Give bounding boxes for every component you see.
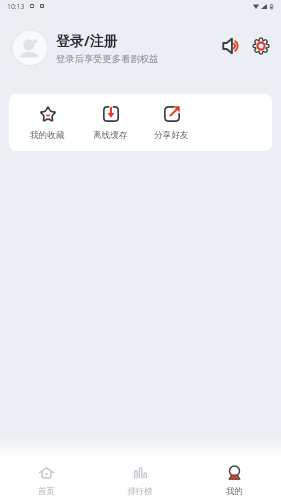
staticText: 排行榜: [127, 486, 153, 497]
button[interactable]: 首页: [0, 459, 93, 500]
staticText: 登录后享受更多看剧权益: [56, 53, 159, 65]
button[interactable]: 我的: [187, 459, 281, 500]
staticText: 分享好友: [154, 130, 189, 141]
staticText: 10:13: [7, 2, 25, 11]
button[interactable]: 离线缓存: [73, 94, 148, 151]
staticText: 离线缓存: [93, 130, 128, 141]
button[interactable]: Settings: [250, 35, 272, 57]
button[interactable]: 我的收藏: [10, 94, 85, 151]
staticText: 我的收藏: [30, 130, 65, 141]
button[interactable]: Sound: [219, 35, 242, 57]
button[interactable]: 排行榜: [93, 459, 187, 500]
button[interactable]: 分享好友: [134, 94, 209, 151]
staticText: 我的: [226, 486, 243, 497]
staticText: 首页: [38, 486, 55, 497]
button[interactable]: Avatar: [11, 29, 49, 67]
staticText: 登录/注册: [56, 31, 118, 50]
